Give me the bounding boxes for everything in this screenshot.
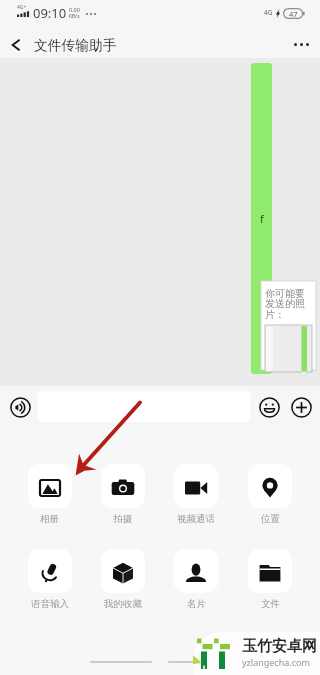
staticText: 文件传输助手 bbox=[34, 37, 117, 54]
staticText: 47 bbox=[289, 9, 298, 19]
button[interactable]: 语音输入 bbox=[13, 549, 86, 610]
staticText: 玉竹安卓网 bbox=[242, 637, 317, 656]
staticText: 你可能要发送的照片： bbox=[265, 287, 306, 321]
button[interactable]: 视频通话 bbox=[159, 464, 233, 525]
button[interactable]: 位置 bbox=[233, 464, 307, 525]
button[interactable]: 相册 bbox=[13, 464, 86, 525]
staticText: KB/s bbox=[69, 13, 80, 20]
button[interactable]: Voice input bbox=[6, 393, 34, 421]
button[interactable]: 文件 bbox=[233, 549, 307, 610]
staticText: 名片 bbox=[187, 598, 206, 610]
other: Back bbox=[12, 39, 20, 51]
staticText: 文件 bbox=[261, 598, 280, 610]
staticText: 4G+ bbox=[17, 4, 27, 11]
staticText: 0.00 bbox=[69, 6, 80, 13]
button[interactable]: Emoji bbox=[255, 393, 283, 421]
button[interactable]: More options bbox=[283, 33, 320, 52]
button[interactable] bbox=[38, 391, 250, 422]
staticText: 我的收藏 bbox=[104, 598, 142, 610]
staticText: 位置 bbox=[261, 513, 280, 525]
button[interactable]: 拍摄 bbox=[86, 464, 159, 525]
staticText: 语音输入 bbox=[31, 598, 69, 610]
staticText: 视频通话 bbox=[177, 513, 215, 525]
staticText: f bbox=[260, 211, 264, 226]
staticText: yzlangecha.com bbox=[242, 656, 310, 668]
button[interactable]: 名片 bbox=[159, 549, 233, 610]
staticText: 4G bbox=[264, 8, 273, 17]
button[interactable]: More attachments bbox=[287, 393, 315, 421]
staticText: 相册 bbox=[40, 513, 59, 525]
button[interactable]: 我的收藏 bbox=[86, 549, 159, 610]
button[interactable]: Back bbox=[0, 32, 123, 53]
staticText: 拍摄 bbox=[113, 513, 132, 525]
staticText: 09:10 bbox=[33, 4, 67, 22]
